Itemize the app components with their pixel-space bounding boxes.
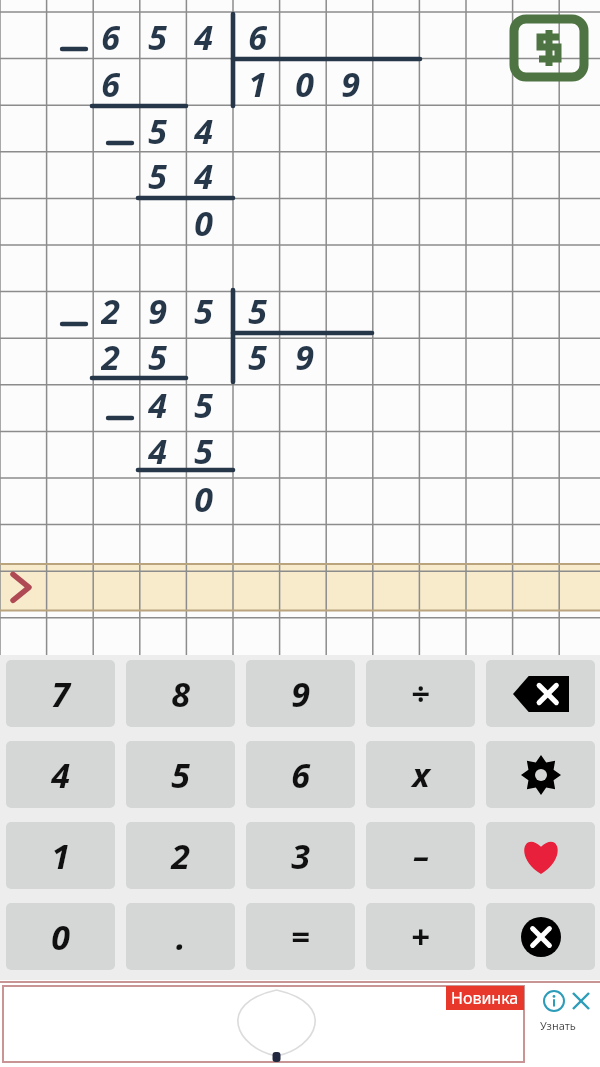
button[interactable]: .	[126, 903, 235, 970]
staticText: 4	[148, 382, 167, 426]
button[interactable]: Новинка	[3, 986, 524, 1062]
staticText: ÷	[411, 671, 430, 716]
staticText: 5	[148, 334, 167, 378]
button[interactable]: 2	[126, 822, 235, 889]
button[interactable]: 6	[246, 741, 355, 808]
staticText: 5	[148, 153, 167, 197]
staticText: .	[176, 914, 186, 960]
button[interactable]: –	[366, 822, 475, 889]
staticText: 9	[341, 61, 360, 105]
button[interactable]: gear	[486, 741, 595, 808]
button[interactable]: 4	[6, 741, 115, 808]
button[interactable]: close	[486, 903, 595, 970]
button[interactable]: 0	[6, 903, 115, 970]
button[interactable]: Remove ads	[510, 13, 588, 83]
staticText: 8	[171, 671, 190, 717]
staticText: 4	[148, 428, 167, 472]
button[interactable]: 1	[6, 822, 115, 889]
staticText: 2	[171, 833, 190, 879]
button[interactable]: 9	[246, 660, 355, 727]
staticText: 2	[101, 288, 120, 332]
staticText: 2	[101, 334, 120, 378]
staticText: 6	[101, 14, 120, 58]
staticText: 4	[194, 108, 213, 152]
staticText: x	[412, 752, 430, 797]
button[interactable]: bksp	[486, 660, 595, 727]
staticText: 9	[291, 671, 310, 717]
staticText: 5	[171, 752, 190, 798]
staticText: 0	[194, 200, 213, 244]
staticText: 5	[248, 334, 267, 378]
button[interactable]: =	[246, 903, 355, 970]
staticText: Новинка	[451, 987, 519, 1009]
staticText: 1	[248, 61, 267, 105]
staticText: 0	[51, 914, 70, 960]
staticText: 9	[295, 334, 314, 378]
staticText: 5	[148, 108, 167, 152]
staticText: 7	[51, 671, 70, 717]
staticText: 6	[291, 752, 310, 798]
staticText: 5	[194, 382, 213, 426]
button[interactable]: x	[366, 741, 475, 808]
button[interactable]: ÷	[366, 660, 475, 727]
staticText: 5	[248, 288, 267, 332]
staticText: 1	[51, 833, 70, 879]
button[interactable]: 5	[126, 741, 235, 808]
button[interactable]: 8	[126, 660, 235, 727]
button[interactable]: heart	[486, 822, 595, 889]
button[interactable]: Close ad	[570, 990, 592, 1012]
staticText: –	[413, 833, 429, 878]
staticText: 9	[148, 288, 167, 332]
staticText: 4	[51, 752, 70, 798]
staticText: 6	[101, 61, 120, 105]
staticText: =	[291, 914, 310, 959]
staticText: 5	[194, 288, 213, 332]
staticText: 4	[194, 14, 213, 58]
button[interactable]: 3	[246, 822, 355, 889]
button[interactable]: 7	[6, 660, 115, 727]
staticText: 6	[248, 14, 267, 58]
staticText: Узнать	[540, 1018, 576, 1033]
staticText: 0	[194, 476, 213, 520]
staticText: 5	[148, 14, 167, 58]
staticText: 3	[291, 833, 310, 879]
staticText: 5	[194, 428, 213, 472]
staticText: 0	[295, 61, 314, 105]
button[interactable]: +	[366, 903, 475, 970]
staticText: 4	[194, 153, 213, 197]
button[interactable]: Ad info	[543, 990, 565, 1012]
staticText: +	[411, 914, 430, 959]
